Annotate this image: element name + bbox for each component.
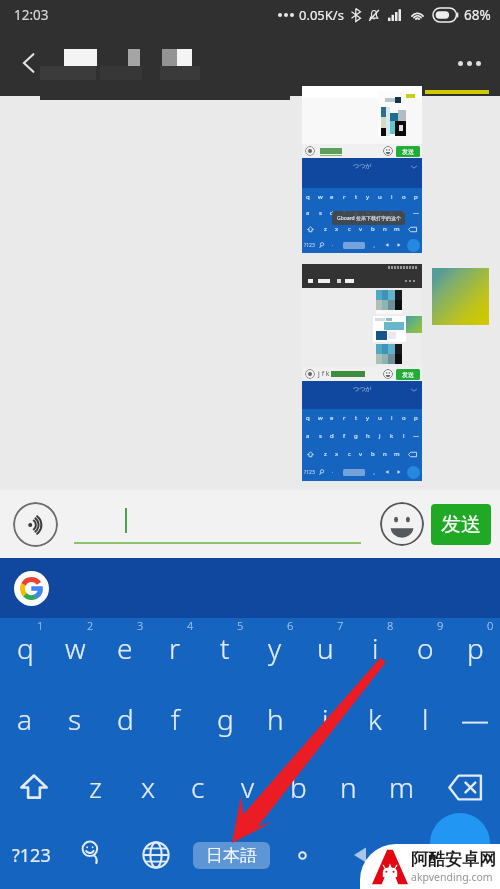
staticText: s — [319, 432, 322, 440]
staticText: m — [394, 225, 400, 233]
button[interactable]: d — [100, 685, 150, 753]
staticText: b — [290, 768, 307, 806]
button[interactable]: Back — [6, 40, 52, 86]
staticText: q — [306, 414, 310, 422]
button[interactable]: m — [373, 753, 430, 821]
staticText: j f k — [318, 369, 330, 379]
staticText: s — [68, 700, 82, 738]
button[interactable]: — — [450, 685, 500, 753]
staticText: 1 — [37, 618, 44, 633]
staticText: f — [171, 700, 180, 738]
button[interactable]: Backspace — [430, 753, 500, 821]
staticText: 。 — [373, 469, 378, 475]
staticText: r — [169, 629, 181, 667]
staticText: e — [117, 629, 133, 667]
button[interactable]: v — [223, 753, 273, 821]
button[interactable]: Move cursor right — [386, 821, 438, 889]
staticText: u — [378, 193, 382, 201]
button[interactable]: Move cursor left — [334, 821, 386, 889]
staticText: 6 — [287, 618, 294, 633]
staticText: g — [217, 700, 234, 738]
button[interactable]: j — [300, 685, 350, 753]
staticText: 0.05K/s — [299, 6, 344, 24]
staticText: n — [383, 450, 387, 458]
button[interactable]: 1 — [0, 618, 50, 685]
button[interactable]: f — [150, 685, 200, 753]
button[interactable]: 日本語 — [192, 821, 271, 889]
staticText: q — [17, 629, 34, 667]
staticText: m — [394, 450, 400, 458]
staticText: つつが — [353, 385, 372, 393]
staticText: — — [413, 432, 420, 440]
staticText: o — [402, 193, 406, 201]
staticText: 发送 — [402, 371, 414, 379]
button[interactable]: 8 — [350, 618, 400, 685]
staticText: f — [343, 432, 346, 440]
staticText: 日本語 — [206, 845, 257, 866]
button[interactable]: 3 — [100, 618, 150, 685]
staticText: p — [467, 629, 484, 667]
staticText: d — [330, 432, 334, 440]
button[interactable]: g — [200, 685, 250, 753]
staticText: a — [306, 209, 310, 217]
button[interactable]: 5 — [200, 618, 250, 685]
button[interactable]: Enter — [438, 821, 500, 889]
staticText: l — [403, 432, 405, 440]
staticText: g — [354, 209, 358, 217]
button[interactable]: 6 — [250, 618, 300, 685]
staticText: o — [402, 414, 406, 422]
button[interactable]: 4 — [150, 618, 200, 685]
staticText: c — [348, 450, 351, 458]
staticText: t — [220, 629, 230, 667]
staticText: l — [422, 700, 429, 738]
button[interactable]: k — [350, 685, 400, 753]
staticText: 12:03 — [14, 6, 49, 24]
button[interactable]: Change language — [119, 821, 192, 889]
button[interactable]: a — [0, 685, 50, 753]
staticText: x — [335, 450, 339, 458]
button[interactable]: b — [273, 753, 323, 821]
button[interactable]: Voice input — [13, 502, 58, 547]
button[interactable]: x — [123, 753, 173, 821]
staticText: e — [330, 414, 334, 422]
staticText: e — [330, 193, 334, 201]
staticText: x — [335, 225, 339, 233]
staticText: u — [378, 414, 382, 422]
staticText: y — [366, 193, 370, 201]
button[interactable]: Emoji — [380, 502, 424, 546]
staticText: w — [65, 629, 86, 667]
button[interactable]: Emoji — [62, 821, 119, 889]
staticText: z — [324, 450, 327, 458]
staticText: t — [355, 414, 358, 422]
button[interactable]: ?123 — [0, 821, 62, 889]
button[interactable]: z — [68, 753, 123, 821]
button[interactable]: n — [323, 753, 373, 821]
button[interactable]: 2 — [50, 618, 100, 685]
staticText: k — [390, 432, 394, 440]
staticText: g — [354, 432, 358, 440]
button[interactable] — [271, 821, 334, 889]
staticText: b — [371, 225, 375, 233]
button[interactable]: c — [173, 753, 223, 821]
button[interactable]: 0 — [450, 618, 500, 685]
staticText: k — [368, 700, 382, 738]
button[interactable]: l — [400, 685, 450, 753]
staticText: ?123 — [304, 469, 315, 476]
staticText: a — [306, 432, 310, 440]
staticText: d — [330, 209, 334, 217]
staticText: q — [306, 193, 310, 201]
button[interactable]: Google search — [14, 571, 49, 606]
staticText: i — [391, 193, 393, 201]
staticText: p — [414, 414, 418, 422]
staticText: 。 — [373, 242, 378, 248]
staticText: 8 — [387, 618, 394, 633]
staticText: m — [389, 768, 415, 806]
button[interactable]: s — [50, 685, 100, 753]
button[interactable]: 7 — [300, 618, 350, 685]
staticText: 0 — [487, 618, 494, 633]
button[interactable]: Shift — [0, 753, 68, 821]
button[interactable]: 发送 — [431, 504, 491, 545]
button[interactable]: h — [250, 685, 300, 753]
button[interactable]: More options — [446, 40, 492, 86]
button[interactable]: 9 — [400, 618, 450, 685]
